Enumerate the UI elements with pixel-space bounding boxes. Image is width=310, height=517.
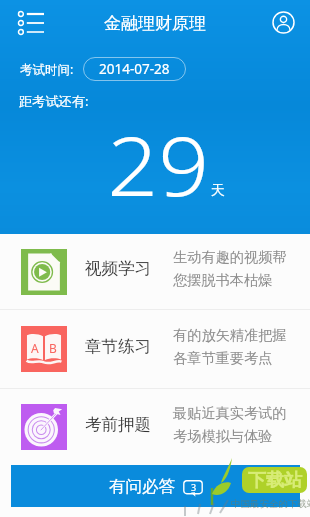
staticText: 考前押题 [85, 414, 151, 435]
staticText: 生动有趣的视频帮 [173, 248, 287, 266]
staticText: 各章节重要考点 [173, 349, 273, 367]
button[interactable]: Menu [14, 7, 48, 41]
staticText: 天 [211, 182, 225, 200]
staticText: 距考试还有: [19, 92, 89, 110]
staticText: 您摆脱书本枯燥 [173, 271, 273, 289]
staticText: 中国最安全的下载站 [231, 498, 310, 510]
staticText: 有问必答 [109, 476, 175, 497]
staticText: B [49, 340, 57, 356]
staticText: 3 [191, 481, 197, 493]
button[interactable]: 视频学习 [0, 234, 310, 309]
button[interactable]: Profile [266, 5, 300, 39]
staticText: 视频学习 [85, 258, 151, 279]
staticText: A [31, 340, 39, 356]
staticText: 有的放矢精准把握 [173, 326, 287, 344]
button[interactable]: A [0, 310, 310, 388]
staticText: 2014-07-28 [99, 60, 170, 78]
button[interactable]: 有问必答 [11, 465, 300, 507]
button[interactable]: 考前押题 [0, 389, 310, 465]
staticText: 金融理财原理 [104, 13, 206, 34]
staticText: 下载站 [248, 469, 302, 492]
staticText: 考试时间: [20, 61, 74, 78]
staticText: 考场模拟与体验 [173, 427, 273, 445]
staticText: 最贴近真实考试的 [173, 404, 287, 422]
staticText: 29 [107, 109, 210, 219]
staticText: 章节练习 [85, 336, 151, 357]
